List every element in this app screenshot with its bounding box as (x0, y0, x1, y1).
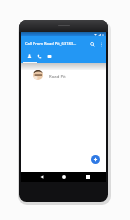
button[interactable]: Contacts (25, 52, 34, 61)
button[interactable]: Search (88, 40, 96, 48)
button[interactable]: Home (60, 173, 68, 181)
button[interactable]: Road Pit (21, 70, 106, 89)
staticText: Road Pit (49, 73, 66, 79)
button[interactable]: More options (97, 40, 105, 48)
button[interactable]: Back (38, 173, 46, 181)
button[interactable]: Calls (35, 52, 44, 61)
button[interactable]: Recent apps (84, 173, 92, 181)
staticText: Call From Road Pit_63183... (25, 41, 77, 46)
button[interactable]: New conversation (91, 155, 100, 164)
button[interactable]: Messages (45, 52, 54, 61)
